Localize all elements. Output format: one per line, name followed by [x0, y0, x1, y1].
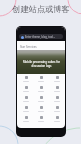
button[interactable]: Service 13: [19, 116, 33, 122]
staticText: Star Services: [20, 45, 37, 49]
button[interactable]: Service 9: [50, 96, 64, 102]
staticText: 创建站点或博客: [12, 4, 70, 14]
button[interactable]: Mobile processing suites for discussion …: [17, 50, 65, 74]
button[interactable]: Service 2: [34, 76, 48, 82]
button[interactable]: Service 15: [50, 116, 64, 122]
button[interactable]: Service 4: [19, 86, 33, 92]
button[interactable]: Service 6: [50, 86, 64, 92]
button[interactable]: Service 8: [34, 96, 48, 102]
button[interactable]: Service 10: [19, 106, 33, 112]
button[interactable]: Enter theme, blog, tool...: [19, 34, 63, 39]
button[interactable]: Service 3: [50, 76, 64, 82]
button[interactable]: Service 12: [50, 106, 64, 112]
button[interactable]: Service 5: [34, 86, 48, 92]
button[interactable]: Service 1: [19, 76, 33, 82]
button[interactable]: Service 11: [34, 106, 48, 112]
button[interactable]: Service 14: [34, 116, 48, 122]
staticText: Mobile processing suites for discussion …: [23, 60, 60, 68]
button[interactable]: Service 7: [19, 96, 33, 102]
staticText: Enter theme, blog, tool...: [25, 35, 56, 39]
